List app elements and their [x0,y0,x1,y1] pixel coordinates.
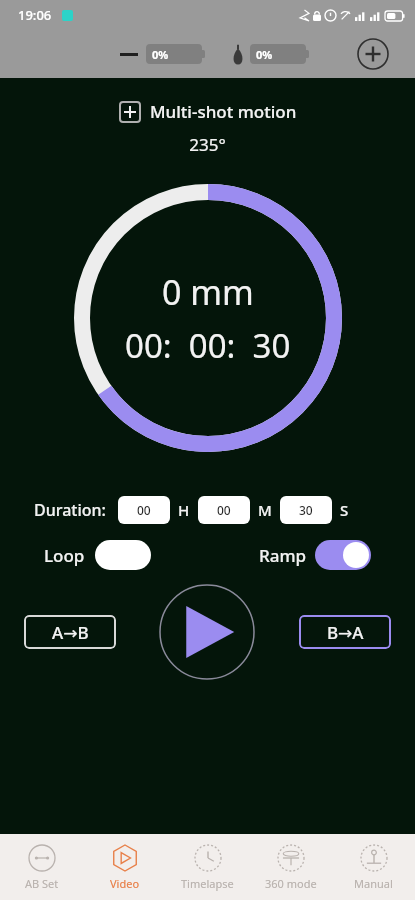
staticText: M [258,500,272,520]
staticText: Multi-shot motion [150,100,297,123]
button[interactable]: 00 [198,496,250,524]
staticText: 19:06 [18,6,52,24]
button[interactable]: 00 [118,496,170,524]
staticText: 00 [217,502,231,518]
staticText: 360 mode [265,876,317,891]
staticText: 0 mm [162,269,254,315]
button[interactable]: Multi-shot motion [119,100,297,123]
button[interactable]: B→A [299,615,391,649]
button[interactable]: Video [83,834,166,900]
button[interactable]: Manual [332,834,415,900]
staticText: B→A [327,621,364,644]
button[interactable]: AB Set [0,834,83,900]
staticText: Loop [44,544,85,567]
staticText: Video [110,876,140,891]
staticText: 0% [152,47,169,62]
button[interactable]: On [315,540,371,570]
staticText: H [178,500,190,520]
staticText: Manual [354,876,393,891]
staticText: A→B [52,621,89,644]
staticText: AB Set [25,876,59,891]
staticText: 235° [0,133,415,156]
staticText: 30 [299,502,313,518]
staticText: 0% [256,47,273,62]
button[interactable]: Off [95,540,151,570]
staticText: 00 [137,502,151,518]
button[interactable]: 360 mode [249,834,332,900]
staticText: Timelapse [181,876,234,891]
staticText: Ramp [259,544,307,567]
button[interactable]: A→B [24,615,116,649]
staticText: Duration: [34,499,106,521]
button[interactable]: 30 [280,496,332,524]
staticText: 00: 00: 30 [125,323,291,368]
button[interactable]: Add [357,38,389,70]
staticText: S [340,500,349,520]
button[interactable]: Decrease [118,43,140,65]
button[interactable]: Play [159,584,255,680]
button[interactable]: Timelapse [166,834,249,900]
